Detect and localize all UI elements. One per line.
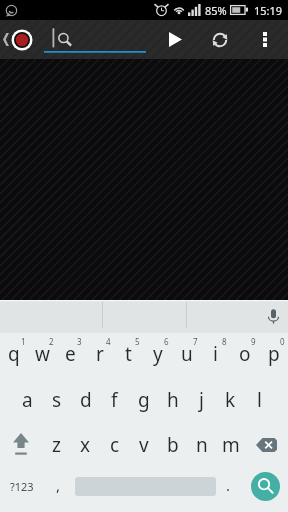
staticText: z (52, 432, 61, 458)
button[interactable]: w (28, 333, 56, 377)
staticText: t (125, 341, 132, 367)
button[interactable]: s (42, 377, 71, 422)
button[interactable]: f (100, 377, 129, 422)
staticText: n (196, 432, 208, 458)
staticText: g (138, 387, 150, 413)
button[interactable]: p (259, 333, 288, 377)
staticText: ?123 (10, 479, 34, 494)
staticText: p (268, 341, 280, 367)
button[interactable]: m (216, 422, 245, 467)
button[interactable]: Search (243, 467, 288, 512)
staticText: 7 (193, 336, 198, 347)
staticText: q (8, 341, 20, 367)
button[interactable]: a (13, 377, 42, 422)
staticText: j (199, 387, 204, 413)
staticText: x (80, 432, 91, 458)
staticText: e (65, 341, 76, 367)
staticText: 2 (49, 336, 54, 347)
staticText: y (153, 341, 163, 367)
button[interactable]: d (71, 377, 100, 422)
button[interactable]: i (201, 333, 230, 377)
button[interactable]: q (0, 333, 28, 377)
staticText: u (181, 341, 193, 367)
staticText: 9 (251, 336, 256, 347)
staticText: . (226, 475, 231, 495)
button[interactable]: Record (11, 29, 33, 51)
button[interactable]: x (71, 422, 100, 467)
staticText: 5 (135, 336, 140, 347)
staticText: k (225, 387, 236, 413)
staticText: s (52, 387, 62, 413)
staticText: , (56, 475, 61, 495)
button[interactable] (73, 467, 214, 512)
button[interactable]: h (158, 377, 187, 422)
button[interactable]: k (216, 377, 245, 422)
button[interactable]: t (114, 333, 143, 377)
button[interactable]: Play (155, 20, 195, 59)
staticText: 4 (106, 336, 111, 347)
staticText: 15:19 (254, 3, 283, 18)
button[interactable]: g (129, 377, 158, 422)
button[interactable]: Back (0, 20, 11, 59)
button[interactable]: o (230, 333, 259, 377)
button[interactable]: b (158, 422, 187, 467)
staticText: 8 (222, 336, 227, 347)
button[interactable]: Voice input (258, 300, 288, 333)
button[interactable]: n (187, 422, 216, 467)
button[interactable]: u (172, 333, 201, 377)
staticText: m (222, 432, 240, 458)
staticText: 0 (280, 336, 285, 347)
staticText: a (22, 387, 33, 413)
staticText: d (80, 387, 92, 413)
staticText: 85% (205, 3, 227, 18)
staticText: r (96, 341, 104, 367)
button[interactable]: r (85, 333, 114, 377)
staticText: 6 (164, 336, 169, 347)
staticText: f (111, 387, 118, 413)
staticText: c (110, 432, 120, 458)
button[interactable]: Shift (0, 422, 42, 467)
button[interactable]: ?123 (0, 467, 44, 512)
button[interactable]: e (56, 333, 85, 377)
staticText: o (239, 341, 251, 367)
button[interactable]: j (187, 377, 216, 422)
button[interactable]: Refresh (200, 20, 240, 59)
staticText: v (139, 432, 149, 458)
button[interactable]: l (245, 377, 274, 422)
button[interactable]: . (214, 467, 243, 512)
button[interactable]: More options (249, 20, 281, 59)
button[interactable]: , (44, 467, 73, 512)
button[interactable]: Backspace (245, 422, 288, 467)
button[interactable]: c (100, 422, 129, 467)
button[interactable]: z (42, 422, 71, 467)
staticText: h (167, 387, 179, 413)
button[interactable]: y (143, 333, 172, 377)
staticText: w (35, 341, 50, 367)
staticText: 1 (21, 336, 26, 347)
button[interactable]: v (129, 422, 158, 467)
button[interactable] (44, 20, 146, 59)
staticText: i (213, 341, 218, 367)
staticText: b (167, 432, 179, 458)
staticText: l (257, 387, 262, 413)
staticText: 3 (77, 336, 82, 347)
